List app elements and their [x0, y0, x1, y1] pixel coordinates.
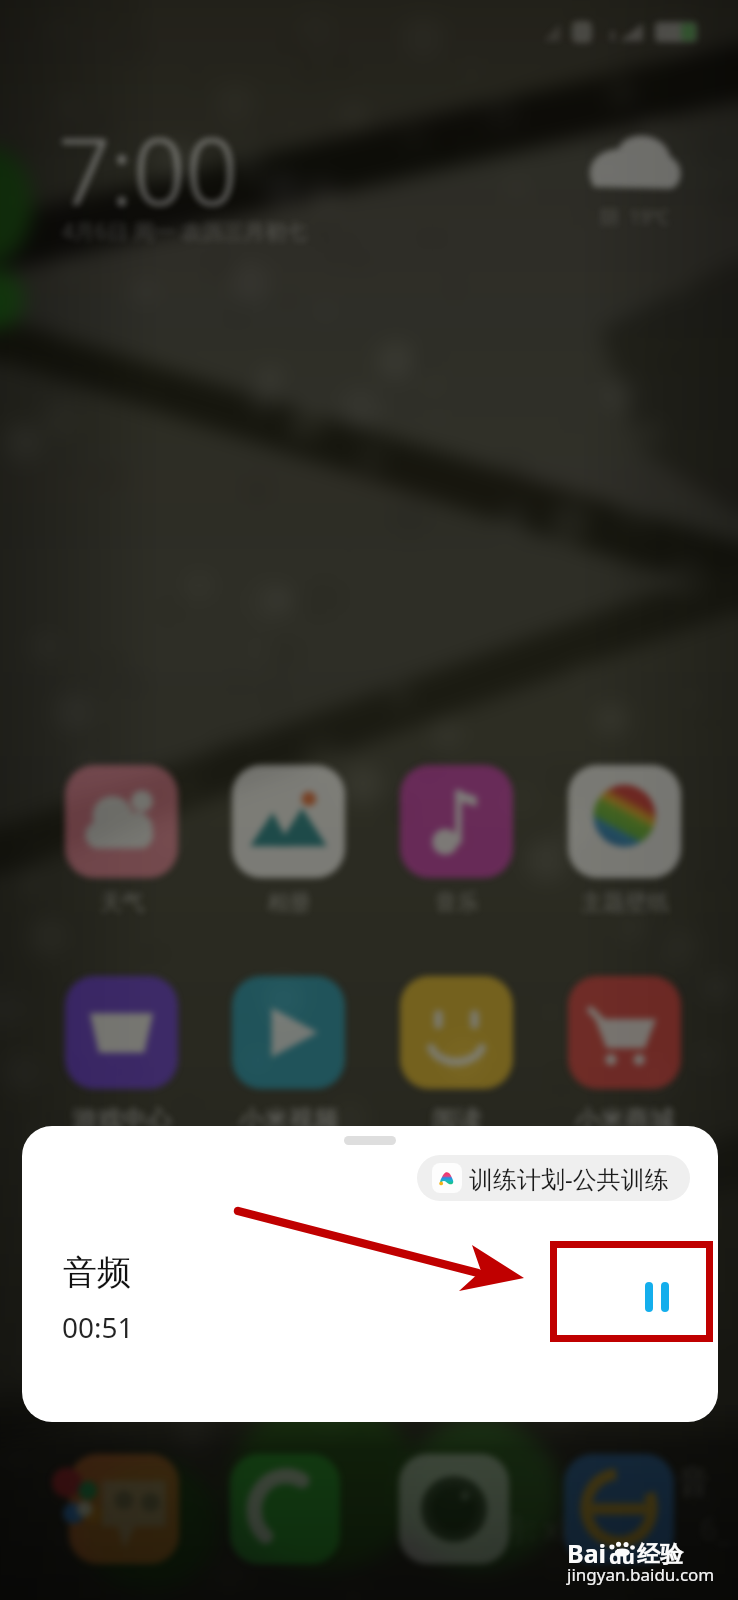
staticText: 相册	[267, 889, 311, 917]
staticText: du	[609, 1543, 635, 1570]
staticText: 经验	[637, 1540, 683, 1569]
staticText: Bai	[567, 1536, 607, 1570]
staticText: 4月6日 周一 农历三月初七	[62, 217, 307, 246]
staticText: 天气	[100, 889, 144, 917]
staticText: 训练计划-公共训练	[469, 1162, 669, 1195]
staticText: 音乐	[435, 889, 479, 917]
staticText: 主题壁纸	[581, 889, 669, 917]
staticText: jingyan.baidu.com	[567, 1563, 715, 1586]
staticText: 小米视频	[239, 1104, 339, 1135]
staticText: 音频	[63, 1251, 131, 1294]
staticText: 游戏中心	[72, 1104, 172, 1135]
button[interactable]: Pause	[619, 1259, 695, 1335]
staticText: 阅读	[432, 1104, 482, 1135]
staticText: 00:51	[62, 1308, 134, 1346]
staticText: 号: xi 6_	[498, 1508, 731, 1549]
staticText: 小米商城	[575, 1104, 675, 1135]
staticText: 7:00	[58, 107, 239, 232]
button[interactable]: 训练计划-公共训练	[417, 1155, 690, 1201]
staticText: 音	[678, 1462, 710, 1502]
staticText: 阴 19℃	[600, 204, 670, 230]
